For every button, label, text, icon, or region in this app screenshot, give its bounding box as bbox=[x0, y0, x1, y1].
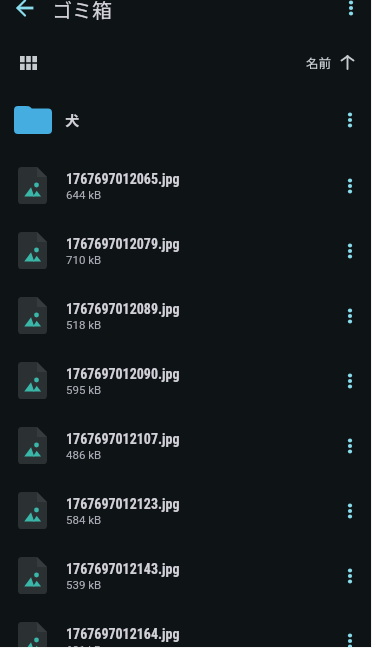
staticText: 1767697012090.jpg bbox=[66, 366, 180, 382]
staticText: 710 kB bbox=[66, 253, 102, 266]
button[interactable]: File options bbox=[333, 234, 367, 268]
button[interactable]: 1767697012123.jpg bbox=[0, 478, 372, 543]
staticText: 584 kB bbox=[66, 513, 102, 526]
button[interactable]: File options bbox=[333, 559, 367, 593]
staticText: 名前 bbox=[306, 53, 332, 71]
button[interactable]: 1767697012107.jpg bbox=[0, 413, 372, 478]
button[interactable]: File options bbox=[333, 624, 367, 648]
staticText: 1767697012123.jpg bbox=[66, 496, 180, 512]
button[interactable]: File options bbox=[333, 169, 367, 203]
button[interactable]: 1767697012090.jpg bbox=[0, 348, 372, 413]
staticText: 1767697012089.jpg bbox=[66, 301, 180, 317]
staticText: 1767697012143.jpg bbox=[66, 561, 180, 577]
staticText: 601 kB bbox=[66, 643, 102, 648]
staticText: 539 kB bbox=[66, 578, 102, 591]
button[interactable]: 1767697012065.jpg bbox=[0, 153, 372, 218]
button[interactable]: File options bbox=[333, 494, 367, 528]
button[interactable]: 1767697012164.jpg bbox=[0, 608, 372, 648]
staticText: 1767697012164.jpg bbox=[66, 626, 180, 642]
button[interactable]: 1767697012079.jpg bbox=[0, 218, 372, 283]
button[interactable]: Back bbox=[8, 0, 42, 25]
button[interactable]: More options bbox=[334, 0, 368, 25]
button[interactable]: 1767697012089.jpg bbox=[0, 283, 372, 348]
button[interactable]: 犬 bbox=[0, 92, 372, 147]
staticText: 518 kB bbox=[66, 318, 102, 331]
staticText: 644 kB bbox=[66, 188, 102, 201]
button[interactable]: File options bbox=[333, 429, 367, 463]
button[interactable]: Switch to grid view bbox=[11, 45, 46, 80]
staticText: 犬 bbox=[65, 110, 79, 130]
button[interactable]: File options bbox=[333, 299, 367, 333]
staticText: 486 kB bbox=[66, 448, 102, 461]
staticText: 595 kB bbox=[66, 383, 102, 396]
button[interactable]: Folder options bbox=[333, 103, 367, 137]
staticText: 1767697012065.jpg bbox=[66, 171, 180, 187]
staticText: 1767697012107.jpg bbox=[66, 431, 180, 447]
button[interactable]: File options bbox=[333, 364, 367, 398]
staticText: ゴミ箱 bbox=[52, 0, 112, 24]
button[interactable]: 1767697012143.jpg bbox=[0, 543, 372, 608]
staticText: 1767697012079.jpg bbox=[66, 236, 180, 252]
button[interactable]: 名前 bbox=[306, 48, 355, 76]
